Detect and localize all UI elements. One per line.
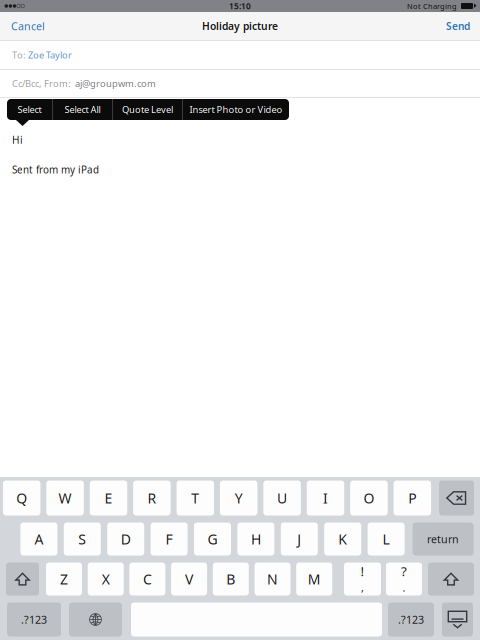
button[interactable]: L — [368, 522, 405, 555]
staticText: Q — [16, 488, 27, 508]
staticText: B — [226, 569, 235, 589]
button[interactable]: V — [171, 562, 207, 595]
button[interactable]: N — [254, 562, 290, 595]
button[interactable]: .?123 — [7, 602, 61, 636]
staticText: Cc/Bcc, From: — [12, 77, 73, 90]
staticText: C — [143, 569, 152, 589]
staticText: O — [363, 488, 374, 508]
staticText: Select — [17, 103, 41, 116]
staticText: H — [251, 529, 261, 549]
staticText: Z — [60, 569, 68, 589]
staticText: .?123 — [398, 612, 424, 627]
button[interactable]: K — [324, 522, 361, 555]
button[interactable]: Y — [220, 480, 257, 515]
staticText: .?123 — [21, 612, 47, 627]
staticText: Sent from my iPad — [12, 163, 99, 176]
staticText: D — [121, 529, 131, 549]
button[interactable]: E — [90, 480, 127, 515]
button[interactable]: Delete — [439, 480, 474, 515]
staticText: A — [34, 529, 43, 549]
button[interactable]: .?123 — [388, 602, 434, 636]
button[interactable]: Select All — [53, 99, 112, 120]
button[interactable]: Z — [46, 562, 82, 595]
staticText: E — [104, 488, 112, 508]
button[interactable]: M — [296, 562, 332, 595]
button[interactable]: G — [194, 522, 231, 555]
button[interactable]: return — [413, 522, 474, 555]
staticText: Holiday picture — [202, 19, 278, 33]
button[interactable]: Insert Photo or Video — [183, 99, 289, 120]
staticText: Y — [235, 488, 243, 508]
staticText: V — [185, 569, 193, 589]
staticText: ! — [360, 562, 364, 580]
button[interactable]: B — [213, 562, 249, 595]
button[interactable]: D — [107, 522, 144, 555]
staticText: G — [207, 529, 217, 549]
button[interactable]: Shift — [6, 562, 39, 595]
staticText: 15:10 — [229, 0, 251, 12]
button[interactable]: Send — [420, 12, 480, 40]
button[interactable]: X — [88, 562, 124, 595]
staticText: Not Charging — [407, 1, 457, 11]
button[interactable]: Cc/Bcc, From: — [0, 70, 480, 97]
button[interactable]: ! — [344, 562, 381, 595]
staticText: X — [102, 569, 110, 589]
button[interactable] — [131, 602, 382, 636]
button[interactable]: U — [263, 480, 301, 515]
staticText: R — [147, 488, 156, 508]
staticText: K — [338, 529, 347, 549]
button[interactable]: Shift — [428, 562, 474, 595]
staticText: Quote Level — [122, 103, 173, 116]
button[interactable]: C — [129, 562, 165, 595]
staticText: , — [361, 580, 364, 595]
staticText: S — [78, 529, 86, 549]
staticText: W — [59, 488, 72, 508]
button[interactable]: Select — [7, 99, 52, 120]
button[interactable]: P — [393, 480, 431, 515]
staticText: T — [191, 488, 199, 508]
button[interactable]: Hide keyboard — [442, 602, 473, 636]
button[interactable]: ? — [386, 562, 422, 595]
staticText: Cancel — [11, 19, 45, 33]
staticText: return — [427, 532, 459, 546]
button[interactable]: T — [177, 480, 214, 515]
button[interactable]: W — [46, 480, 84, 515]
staticText: Zoe Taylor — [28, 49, 72, 61]
staticText: aj@groupwm.com — [73, 77, 156, 90]
button[interactable]: F — [151, 522, 188, 555]
staticText: F — [166, 529, 173, 549]
button[interactable]: Cancel — [0, 12, 60, 40]
staticText: To: — [12, 49, 28, 61]
staticText: N — [267, 569, 278, 589]
button[interactable]: O — [350, 480, 388, 515]
staticText: Insert Photo or Video — [189, 103, 282, 116]
button[interactable]: A — [20, 522, 57, 555]
button[interactable]: Quote Level — [113, 99, 182, 120]
button[interactable]: H — [237, 522, 274, 555]
staticText: Hi — [12, 133, 23, 147]
button[interactable]: I — [307, 480, 344, 515]
staticText: M — [308, 569, 321, 589]
staticText: P — [408, 488, 416, 508]
staticText: U — [277, 488, 287, 508]
staticText: ? — [401, 562, 407, 580]
button[interactable]: R — [133, 480, 171, 515]
staticText: L — [383, 529, 390, 549]
button[interactable]: Q — [3, 480, 40, 515]
staticText: . — [402, 580, 405, 595]
staticText: I — [323, 488, 328, 508]
button[interactable]: J — [281, 522, 318, 555]
staticText: J — [297, 529, 301, 549]
button[interactable]: Next keyboard — [69, 602, 122, 636]
button[interactable]: S — [64, 522, 101, 555]
staticText: Select All — [64, 103, 100, 116]
button[interactable]: To: — [0, 41, 480, 69]
staticText: Send — [446, 19, 470, 33]
